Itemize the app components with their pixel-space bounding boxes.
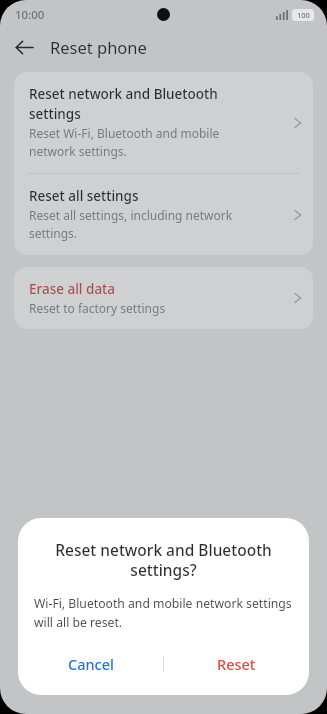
staticText: Reset network and Bluetooth settings? <box>34 539 293 581</box>
button[interactable]: Erase all data <box>14 267 313 329</box>
staticText: Cancel <box>68 654 114 674</box>
staticText: Reset all settings, including network se… <box>29 207 233 242</box>
staticText: Reset Wi-Fi, Bluetooth and mobile networ… <box>29 125 220 160</box>
staticText: 100 <box>297 10 310 20</box>
staticText: Erase all data <box>29 280 116 298</box>
button[interactable]: Reset <box>164 646 309 682</box>
button[interactable]: Back <box>8 31 40 63</box>
staticText: Reset <box>217 654 256 674</box>
staticText: 10:00 <box>15 7 45 23</box>
staticText: Wi-Fi, Bluetooth and mobile network sett… <box>34 595 293 630</box>
button[interactable]: Reset all settings <box>14 174 313 255</box>
staticText: Reset to factory settings <box>29 300 166 316</box>
staticText: Reset network and Bluetooth settings <box>29 85 218 123</box>
staticText: Reset phone <box>50 36 147 58</box>
button[interactable]: Cancel <box>18 646 163 682</box>
button[interactable]: Reset network and Bluetooth settings <box>14 72 313 173</box>
staticText: Reset all settings <box>29 187 139 205</box>
